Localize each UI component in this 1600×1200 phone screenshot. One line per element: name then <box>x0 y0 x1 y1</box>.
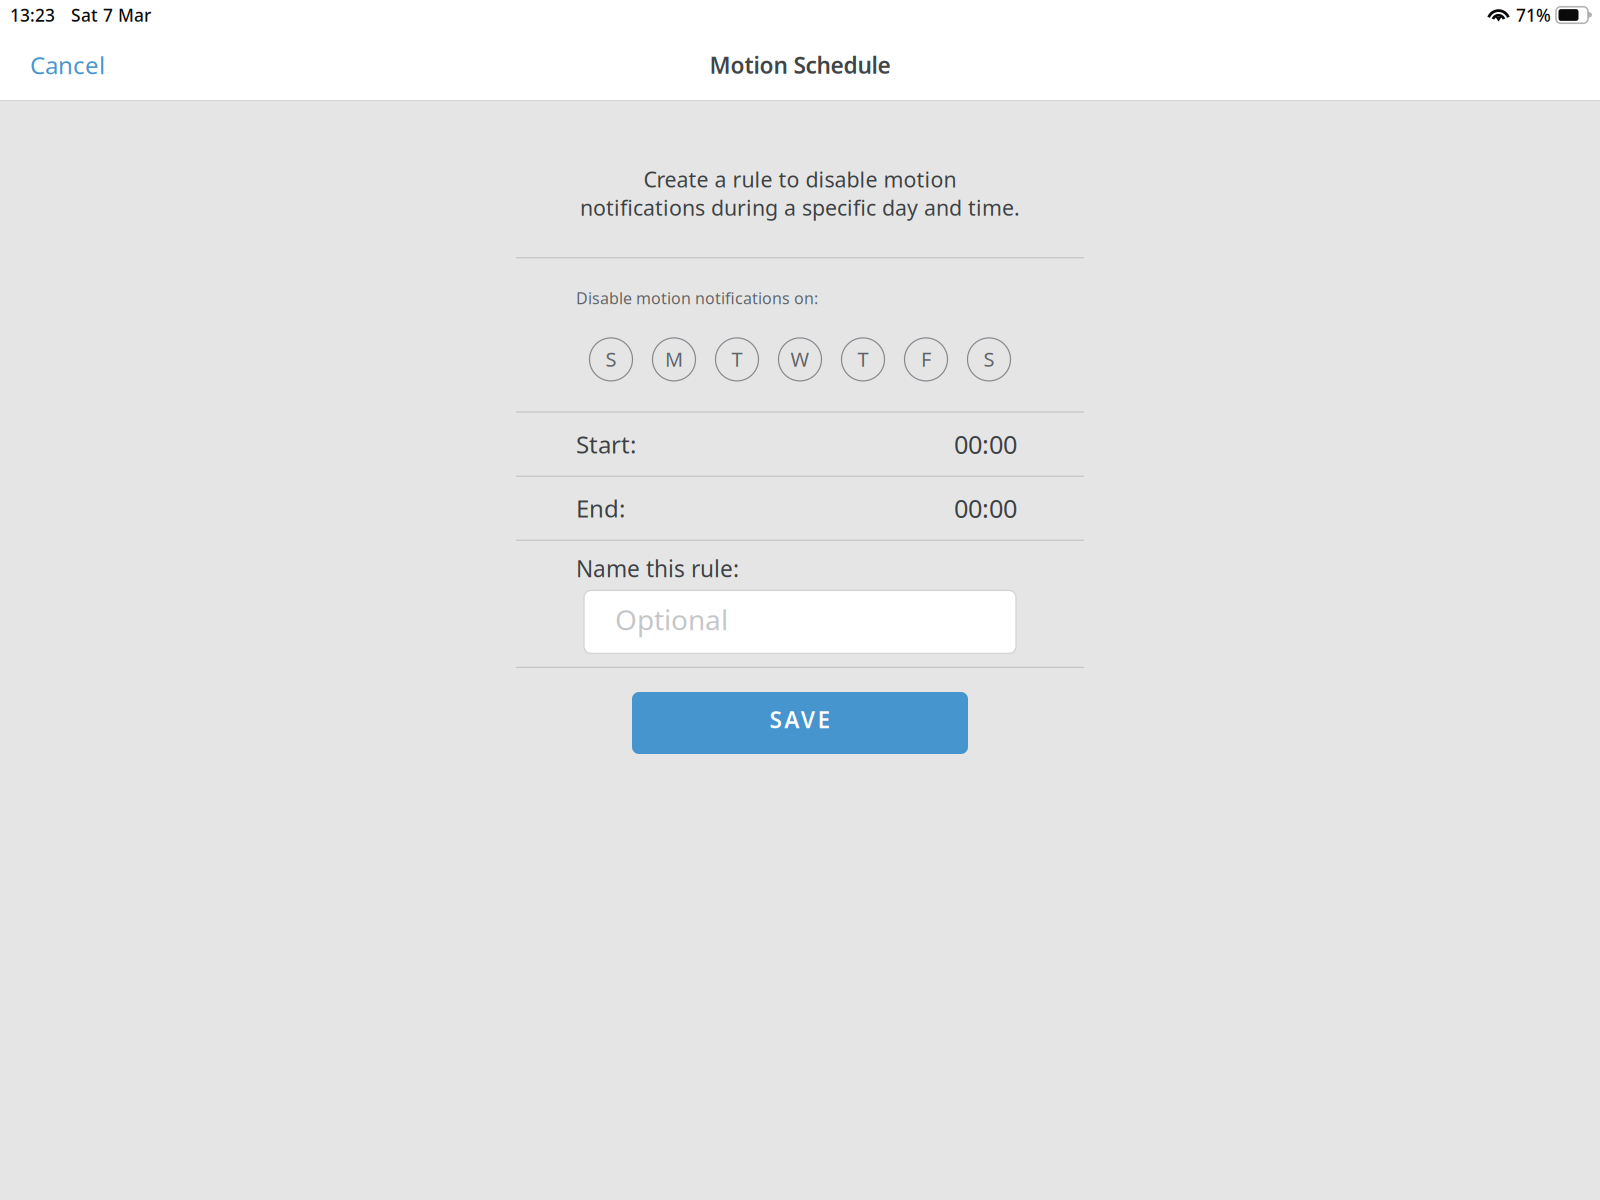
staticText: Create a rule to disable motion <box>643 165 956 193</box>
button[interactable]: SAVE <box>632 692 968 754</box>
staticText: 71% <box>1516 3 1551 26</box>
staticText: Cancel <box>30 49 105 81</box>
button[interactable]: Cancel <box>0 30 135 100</box>
staticText: Sat 7 Mar <box>71 3 151 26</box>
button[interactable]: Monday <box>652 338 695 381</box>
staticText: T <box>857 346 868 372</box>
staticText: Disable motion notifications on: <box>576 287 818 309</box>
staticText: 00:00 <box>954 427 1017 461</box>
staticText: 00:00 <box>954 491 1017 525</box>
staticText: SAVE <box>770 704 830 735</box>
button[interactable]: Sunday <box>589 338 632 381</box>
staticText: notifications during a specific day and … <box>580 193 1020 222</box>
button[interactable]: Start: <box>516 413 1084 476</box>
button[interactable]: Saturday <box>967 338 1010 381</box>
staticText: 13:23 <box>10 3 55 26</box>
button[interactable]: Thursday <box>841 338 884 381</box>
button[interactable]: Wednesday <box>778 338 821 381</box>
staticText: Name this rule: <box>576 553 739 583</box>
staticText: F <box>921 346 931 372</box>
staticText: T <box>731 346 742 372</box>
staticText: W <box>790 346 809 372</box>
button[interactable]: Friday <box>904 338 947 381</box>
staticText: End: <box>576 492 625 524</box>
staticText: Start: <box>576 428 636 460</box>
button[interactable]: Optional <box>584 590 1016 653</box>
staticText: S <box>983 346 994 372</box>
button[interactable]: Tuesday <box>715 338 758 381</box>
staticText: Optional <box>615 601 728 638</box>
staticText: M <box>665 346 683 372</box>
staticText: Motion Schedule <box>709 50 890 80</box>
button[interactable]: End: <box>516 477 1084 540</box>
staticText: S <box>605 346 616 372</box>
